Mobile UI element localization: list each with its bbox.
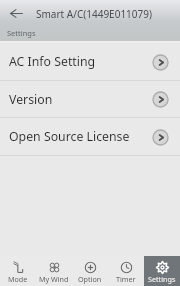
button[interactable]: My Wind — [36, 256, 72, 286]
staticText: Timer — [116, 274, 136, 284]
button[interactable]: Option — [72, 256, 108, 286]
button[interactable]: AC Info Setting — [0, 43, 180, 81]
staticText: Settings — [148, 274, 176, 284]
staticText: Mode — [8, 274, 28, 284]
button[interactable]: Open Source License — [0, 118, 180, 156]
button[interactable]: Version — [0, 81, 180, 118]
button[interactable]: Settings — [144, 256, 180, 286]
staticText: Smart A/C(1449E011079) — [36, 7, 152, 21]
button[interactable]: Timer — [108, 256, 144, 286]
staticText: Open Source License — [9, 128, 130, 145]
staticText: My Wind — [39, 274, 69, 284]
button[interactable]: Mode — [0, 256, 36, 286]
staticText: Settings — [7, 28, 36, 38]
staticText: Option — [78, 274, 102, 284]
staticText: AC Info Setting — [9, 53, 96, 70]
button[interactable]: Back — [0, 0, 32, 26]
staticText: Version — [9, 91, 53, 108]
